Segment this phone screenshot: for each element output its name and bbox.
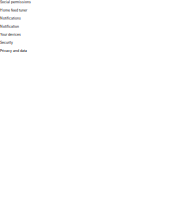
staticText: Notifications bbox=[0, 16, 21, 20]
staticText: Notification bbox=[0, 24, 19, 28]
staticText: Privacy and data bbox=[0, 49, 27, 53]
staticText: Social permissions bbox=[0, 0, 31, 4]
staticText: Security bbox=[0, 41, 13, 45]
staticText: Home feed tuner bbox=[0, 8, 27, 12]
staticText: Your devices bbox=[0, 32, 21, 37]
